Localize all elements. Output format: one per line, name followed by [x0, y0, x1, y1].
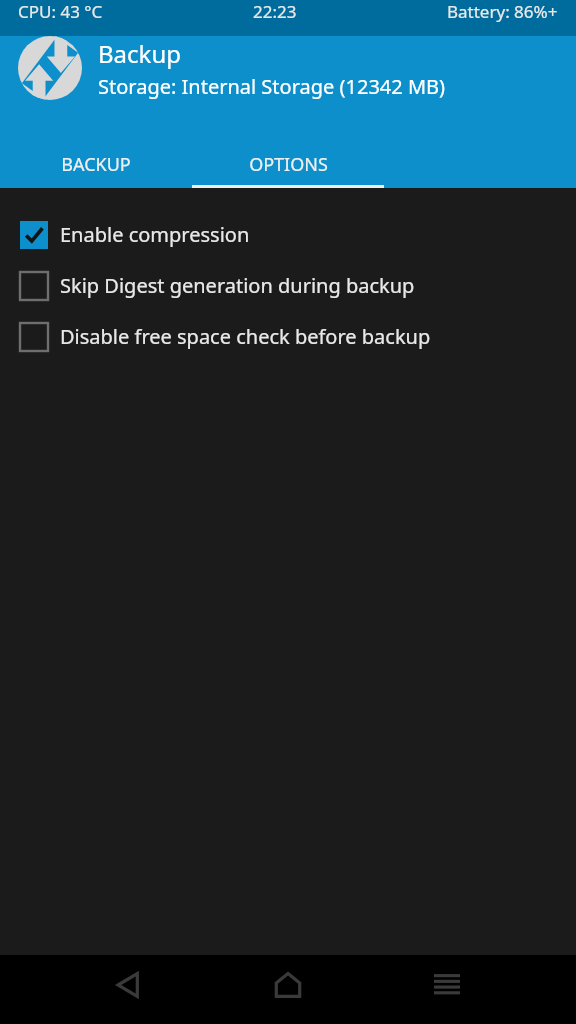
staticText: Skip Digest generation during backup — [60, 272, 415, 299]
staticText: CPU: 43 °C — [18, 0, 103, 23]
staticText: Battery: 86%+ — [447, 0, 558, 23]
button[interactable]: Disable free space check before backup — [0, 311, 576, 362]
staticText: BACKUP — [61, 152, 131, 177]
staticText: OPTIONS — [249, 152, 328, 177]
staticText: Disable free space check before backup — [60, 323, 431, 350]
staticText: Storage: Internal Storage (12342 MB) — [98, 73, 446, 100]
button[interactable]: Skip Digest generation during backup — [0, 260, 576, 311]
button[interactable]: Recent apps — [417, 955, 477, 1015]
button[interactable]: Enable compression — [0, 209, 576, 260]
button[interactable]: BACKUP — [0, 138, 192, 188]
staticText: Enable compression — [60, 221, 250, 248]
staticText: Backup — [98, 37, 181, 70]
button[interactable]: Back — [99, 955, 159, 1015]
staticText: 22:23 — [253, 0, 297, 23]
button[interactable]: OPTIONS — [192, 138, 384, 188]
button[interactable]: Home — [258, 955, 318, 1015]
